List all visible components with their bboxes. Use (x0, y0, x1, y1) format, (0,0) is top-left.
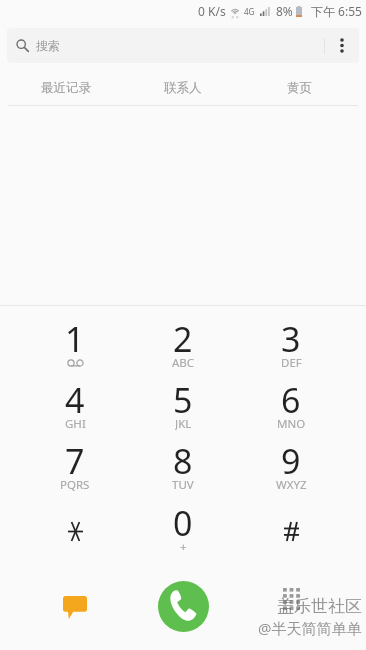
staticText: 8 (173, 438, 193, 484)
button[interactable]: 7 (21, 428, 129, 490)
staticText: TUV (172, 477, 194, 491)
staticText: 盖乐世社区 (277, 596, 362, 617)
button[interactable]: Message (21, 580, 129, 650)
button[interactable]: 5 (129, 367, 237, 428)
staticText: 4 (65, 377, 85, 423)
button[interactable]: Hide keypad (237, 580, 345, 650)
staticText: 4G (244, 6, 255, 17)
button[interactable] (21, 490, 129, 552)
staticText: 联系人 (164, 80, 202, 96)
button[interactable]: 3 (237, 306, 345, 367)
staticText: 2 (173, 316, 193, 362)
staticText: @半天简简单单 (258, 618, 362, 638)
staticText: 7 (65, 438, 85, 484)
staticText: 搜索 (36, 38, 60, 53)
staticText: MNO (277, 416, 306, 430)
button[interactable]: 2 (129, 306, 237, 367)
staticText: JKL (175, 416, 192, 430)
staticText: + (180, 539, 187, 553)
button[interactable]: 8 (129, 428, 237, 490)
staticText: WXYZ (276, 477, 307, 491)
button[interactable]: Call (129, 580, 237, 650)
button[interactable]: 最近记录 (8, 66, 124, 105)
staticText: 1 (65, 316, 85, 362)
staticText: 9 (281, 438, 301, 484)
button[interactable]: 黄页 (241, 66, 358, 105)
button[interactable]: 联系人 (124, 66, 241, 105)
staticText: 5 (173, 377, 193, 423)
button[interactable]: 0 (129, 490, 237, 552)
staticText: ABC (172, 355, 195, 369)
staticText: 下午 6:55 (311, 3, 362, 19)
staticText: 8% (276, 3, 293, 19)
staticText: DEF (281, 355, 302, 369)
button[interactable]: 6 (237, 367, 345, 428)
staticText: PQRS (60, 477, 90, 491)
button[interactable]: 1 (21, 306, 129, 367)
button[interactable]: 4 (21, 367, 129, 428)
staticText: GHI (65, 416, 86, 430)
button[interactable]: More options (325, 28, 359, 63)
staticText: 最近记录 (41, 80, 91, 96)
staticText: 0 K/s (198, 3, 226, 19)
button[interactable]: 搜索 (7, 28, 359, 63)
staticText: 6 (281, 377, 301, 423)
staticText: 3 (281, 316, 301, 362)
staticText: 黄页 (287, 80, 312, 96)
staticText: 0 (173, 500, 193, 546)
button[interactable] (237, 490, 345, 552)
button[interactable]: 9 (237, 428, 345, 490)
